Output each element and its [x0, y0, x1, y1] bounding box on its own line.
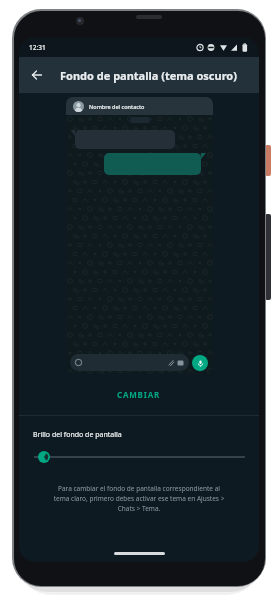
staticText: CAMBIAR — [117, 389, 161, 400]
staticText: Para cambiar el fondo de pantalla corres… — [19, 484, 259, 513]
button[interactable]: CAMBIAR — [107, 387, 171, 402]
staticText: Nombre del contacto — [89, 103, 145, 110]
staticText: 12:31 — [29, 43, 46, 52]
button[interactable] — [19, 57, 55, 93]
staticText: Fondo de pantalla (tema oscuro) — [60, 68, 237, 83]
staticText: Brillo del fondo de pantalla — [33, 430, 122, 440]
button[interactable] — [19, 451, 259, 463]
